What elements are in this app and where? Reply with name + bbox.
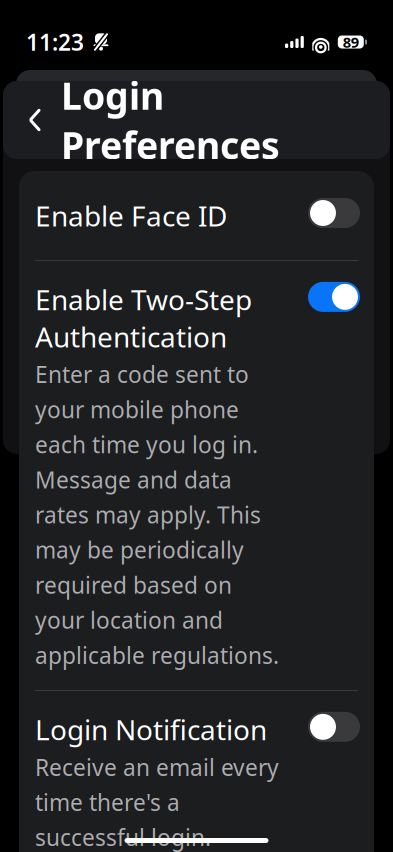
staticText: 11:23 — [26, 27, 84, 57]
staticText: 89 — [343, 32, 359, 52]
staticText: Receive an email every time there's a su… — [35, 752, 279, 852]
staticText: Enable Face ID — [35, 197, 227, 234]
staticText: Enable Two-Step Authentication — [35, 281, 252, 355]
button[interactable]: Enable Two-Step Authentication — [19, 261, 374, 690]
staticText: Login Notification — [35, 711, 267, 748]
staticText: Enter a code sent to your mobile phone e… — [35, 359, 279, 670]
button[interactable]: Login Notification — [19, 691, 374, 852]
button[interactable]: Enable Face ID — [19, 171, 374, 260]
button[interactable]: Back — [13, 98, 57, 142]
staticText: Login Preferences — [61, 70, 280, 170]
